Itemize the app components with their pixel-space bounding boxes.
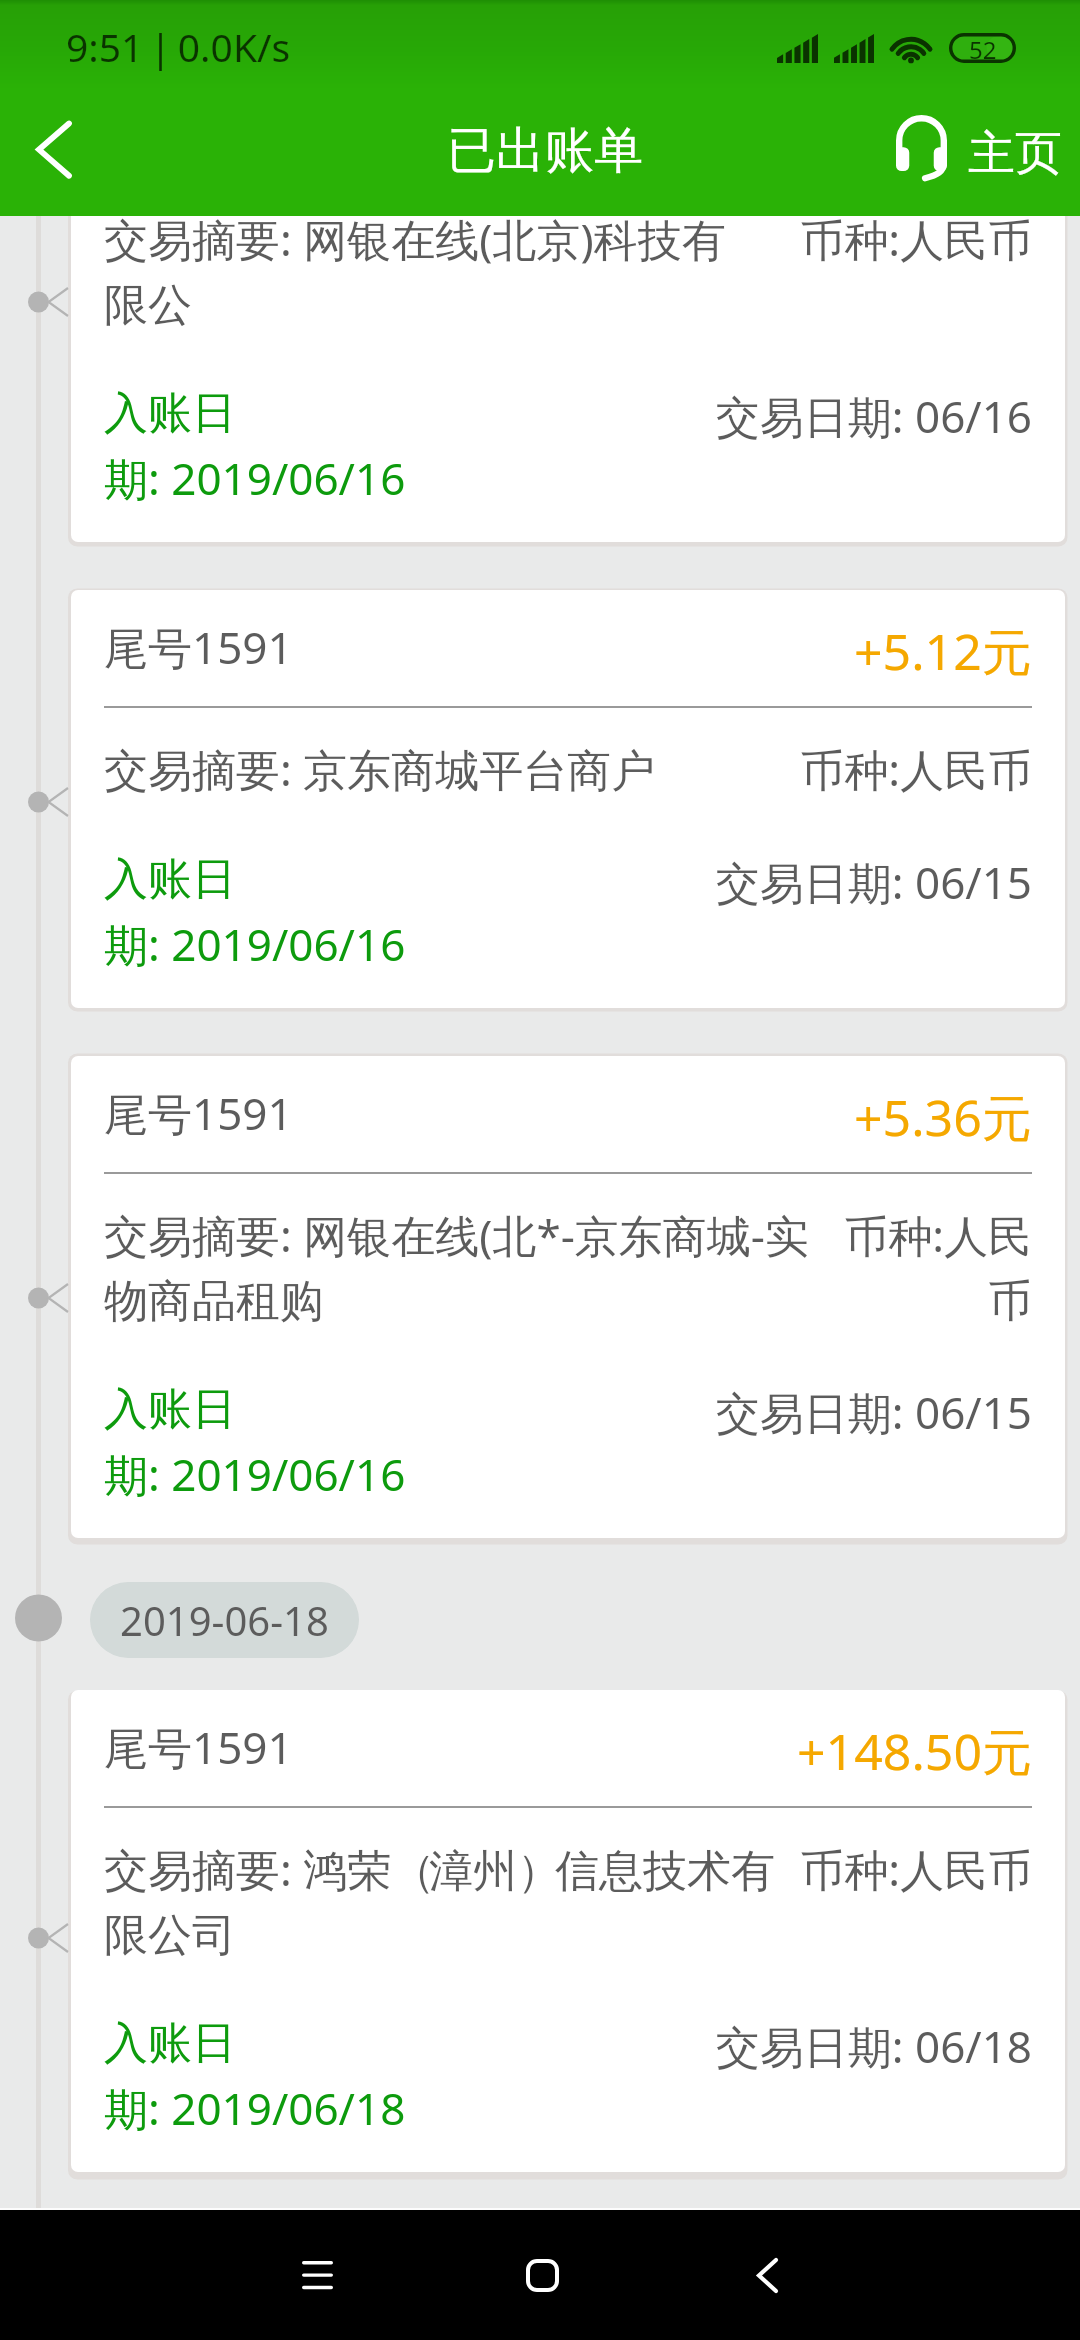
staticText: 2019-06-18 — [120, 1593, 329, 1647]
staticText: 币种:人民币 — [800, 209, 1032, 269]
staticText: +5.36元 — [854, 1083, 1032, 1143]
staticText: 币种:人民币 — [800, 1839, 1032, 1899]
button[interactable]: Back — [711, 2210, 823, 2340]
button[interactable]: 尾号1591 — [71, 590, 1065, 1008]
staticText: 尾号1591 — [104, 1083, 293, 1143]
staticText: 尾号1591 — [104, 1717, 293, 1777]
staticText: 交易日期: 06/16 — [715, 386, 1032, 446]
staticText: 主页 — [968, 124, 1062, 183]
staticText: 交易日期: 06/18 — [715, 2016, 1032, 2076]
staticText: 52 — [969, 33, 997, 63]
staticText: 交易摘要: 京东商城平台商户 — [104, 739, 656, 799]
staticText: +0.00元 — [854, 87, 1032, 147]
staticText: 入账日 期: 2019/06/18 — [104, 2016, 406, 2138]
button[interactable]: 尾号1591 — [71, 60, 1065, 542]
staticText: 已出账单 — [447, 120, 643, 182]
button[interactable]: 2019-06-18 — [90, 1582, 359, 1658]
button[interactable]: 尾号1591 — [71, 1056, 1065, 1538]
button[interactable]: Recent apps — [261, 2210, 373, 2340]
staticText: +148.50元 — [797, 1717, 1032, 1777]
staticText: 9:51 | 0.0K/s — [66, 20, 291, 73]
staticText: 交易日期: 06/15 — [715, 1382, 1032, 1442]
staticText: 入账日 期: 2019/06/16 — [104, 1382, 406, 1504]
staticText: 交易日期: 06/15 — [715, 852, 1032, 912]
button[interactable]: 主页 — [896, 90, 1080, 216]
staticText: 交易摘要: 网银在线(北京)科技有 限公 — [104, 209, 726, 333]
staticText: 交易摘要: 网银在线(北*-京东商城-实 物商品租购 — [104, 1205, 810, 1329]
staticText: 交易摘要: 鸿荣（漳州）信息技术有 限公司 — [104, 1839, 775, 1963]
staticText: 尾号1591 — [104, 617, 293, 677]
button[interactable]: Back — [0, 90, 110, 216]
staticText: +5.12元 — [854, 617, 1032, 677]
staticText: 入账日 期: 2019/06/16 — [104, 852, 406, 974]
staticText: 币种:人民币 — [800, 739, 1032, 799]
button[interactable]: 尾号1591 — [71, 1690, 1065, 2172]
button[interactable]: Home — [486, 2210, 598, 2340]
staticText: 币种:人民 币 — [844, 1205, 1032, 1329]
staticText: 入账日 期: 2019/06/16 — [104, 386, 406, 508]
